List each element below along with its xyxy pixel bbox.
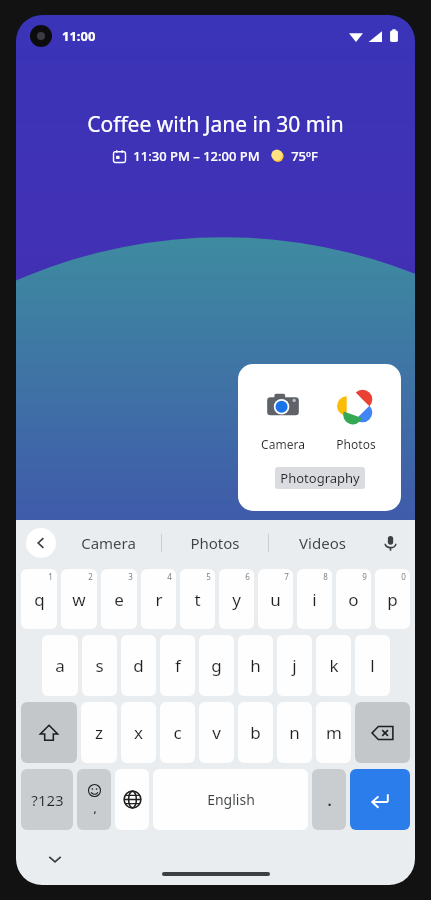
button[interactable]: Backspace	[355, 702, 410, 763]
button[interactable]: s	[82, 635, 117, 696]
staticText: h	[250, 654, 261, 677]
button[interactable]: d	[121, 635, 156, 696]
button[interactable]: j	[277, 635, 312, 696]
button[interactable]: c	[160, 702, 195, 763]
staticText: 4	[167, 571, 172, 582]
staticText: k	[329, 654, 339, 677]
staticText: u	[270, 588, 281, 611]
staticText: 7	[284, 571, 289, 582]
staticText: t	[194, 588, 201, 611]
staticText: 6	[245, 571, 250, 582]
staticText: Camera	[81, 533, 136, 553]
staticText: p	[387, 588, 398, 611]
button[interactable]: .	[312, 769, 346, 830]
button[interactable]: h	[238, 635, 273, 696]
staticText: y	[232, 588, 241, 611]
button[interactable]: n	[277, 702, 312, 763]
button[interactable]: p	[375, 569, 410, 629]
staticText: d	[133, 654, 144, 677]
staticText: f	[175, 654, 181, 677]
button[interactable]: t	[180, 569, 215, 629]
button[interactable]: Enter	[350, 769, 410, 830]
button[interactable]: Emoji	[77, 769, 111, 830]
staticText: b	[250, 721, 261, 744]
button[interactable]: x	[121, 702, 156, 763]
button[interactable]: l	[355, 635, 390, 696]
button[interactable]: w	[61, 569, 97, 629]
button[interactable]: g	[199, 635, 234, 696]
staticText: o	[348, 588, 359, 611]
button[interactable]: m	[316, 702, 351, 763]
button[interactable]: Videos	[269, 520, 375, 566]
staticText: g	[211, 654, 222, 677]
staticText: .	[327, 790, 332, 810]
staticText: Photography	[280, 469, 360, 487]
staticText: 9	[362, 571, 367, 582]
button[interactable]: f	[160, 635, 195, 696]
button[interactable]: Coffee with Jane in 30 min	[16, 110, 415, 165]
button[interactable]: Camera	[256, 379, 310, 456]
staticText: c	[173, 721, 182, 744]
button[interactable]: i	[297, 569, 332, 629]
button[interactable]: u	[258, 569, 293, 629]
staticText: Photos	[336, 436, 376, 452]
button[interactable]: a	[42, 635, 78, 696]
staticText: z	[95, 721, 103, 744]
button[interactable]: Back	[26, 528, 56, 558]
staticText: n	[289, 721, 300, 744]
button[interactable]: Photography	[275, 467, 365, 489]
button[interactable]: Voice input	[375, 528, 405, 558]
button[interactable]: y	[219, 569, 254, 629]
staticText: v	[212, 721, 221, 744]
button[interactable]: o	[336, 569, 371, 629]
staticText: e	[114, 588, 124, 611]
button[interactable]: Camera	[56, 520, 161, 566]
staticText: q	[34, 588, 45, 611]
button[interactable]: Shift	[21, 702, 77, 763]
button[interactable]: English	[153, 769, 308, 830]
button[interactable]: r	[141, 569, 176, 629]
staticText: 5	[206, 571, 211, 582]
staticText: ?123	[31, 790, 64, 810]
button[interactable]: Photos	[329, 379, 383, 456]
button[interactable]: k	[316, 635, 351, 696]
staticText: r	[155, 588, 163, 611]
staticText: Camera	[261, 436, 305, 452]
staticText: 8	[323, 571, 328, 582]
button[interactable]: e	[101, 569, 137, 629]
staticText: 0	[401, 571, 406, 582]
staticText: Photos	[190, 533, 240, 553]
staticText: Videos	[299, 533, 346, 553]
staticText: j	[292, 654, 297, 677]
staticText: 11:00	[62, 27, 96, 45]
button[interactable]: Hide keyboard	[40, 844, 70, 874]
staticText: i	[312, 588, 317, 611]
staticText: m	[326, 721, 342, 744]
staticText: 11:30 PM – 12:00 PM	[133, 147, 260, 165]
button[interactable]: ?123	[21, 769, 73, 830]
staticText: l	[370, 654, 375, 677]
button[interactable]: Change language	[115, 769, 149, 830]
button[interactable]: b	[238, 702, 273, 763]
staticText: 2	[88, 571, 93, 582]
staticText: ,	[93, 801, 97, 816]
staticText: x	[134, 721, 143, 744]
button[interactable]: q	[21, 569, 57, 629]
staticText: w	[72, 588, 86, 611]
staticText: 3	[128, 571, 133, 582]
staticText: s	[95, 654, 104, 677]
staticText: a	[55, 654, 65, 677]
staticText: English	[207, 790, 255, 809]
staticText: Coffee with Jane in 30 min	[16, 110, 415, 139]
button[interactable]: Photos	[162, 520, 268, 566]
button[interactable]: z	[81, 702, 117, 763]
button[interactable]: v	[199, 702, 234, 763]
staticText: 1	[48, 571, 53, 582]
staticText: 75ºF	[291, 147, 318, 165]
